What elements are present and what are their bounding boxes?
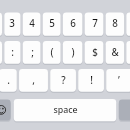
staticText: & xyxy=(111,46,119,59)
button[interactable]: $ xyxy=(85,41,104,64)
staticText: ; xyxy=(31,46,34,59)
button[interactable]: , xyxy=(19,69,48,92)
button[interactable]: 3 xyxy=(4,13,20,36)
button[interactable]: : xyxy=(4,41,20,64)
staticText: . xyxy=(7,74,10,87)
button[interactable]: space xyxy=(14,99,116,121)
button[interactable]: ! xyxy=(78,69,104,92)
button[interactable]: 8 xyxy=(106,13,124,36)
staticText: 8 xyxy=(112,17,118,30)
staticText: $ xyxy=(92,46,98,59)
button[interactable]: - xyxy=(0,41,2,64)
button[interactable]: @ xyxy=(126,41,130,64)
button[interactable]: 5 xyxy=(43,13,61,36)
staticText: 6 xyxy=(70,17,76,30)
staticText: 5 xyxy=(49,17,55,30)
button[interactable]: . xyxy=(0,69,17,92)
staticText: ! xyxy=(90,74,93,87)
button[interactable]: 4 xyxy=(23,13,41,36)
button[interactable]: ) xyxy=(63,41,82,64)
staticText: space xyxy=(53,104,78,116)
button[interactable]: ; xyxy=(23,41,41,64)
staticText: ’ xyxy=(118,74,120,87)
staticText: 3 xyxy=(9,17,15,30)
button[interactable]: ’ xyxy=(106,69,130,92)
button[interactable]: Return xyxy=(119,100,130,121)
staticText: : xyxy=(11,46,14,59)
button[interactable]: ( xyxy=(43,41,61,64)
button[interactable]: Emoji xyxy=(0,100,11,121)
staticText: ( xyxy=(50,46,54,59)
staticText: , xyxy=(32,74,35,87)
staticText: ) xyxy=(71,46,75,59)
button[interactable]: 6 xyxy=(63,13,82,36)
staticText: 7 xyxy=(92,17,98,30)
button[interactable]: 2 xyxy=(0,13,2,36)
button[interactable]: & xyxy=(106,41,124,64)
staticText: 4 xyxy=(29,17,35,30)
staticText: ? xyxy=(61,74,66,87)
button[interactable]: 7 xyxy=(85,13,104,36)
button[interactable]: 9 xyxy=(126,13,130,36)
button[interactable]: ? xyxy=(50,69,76,92)
